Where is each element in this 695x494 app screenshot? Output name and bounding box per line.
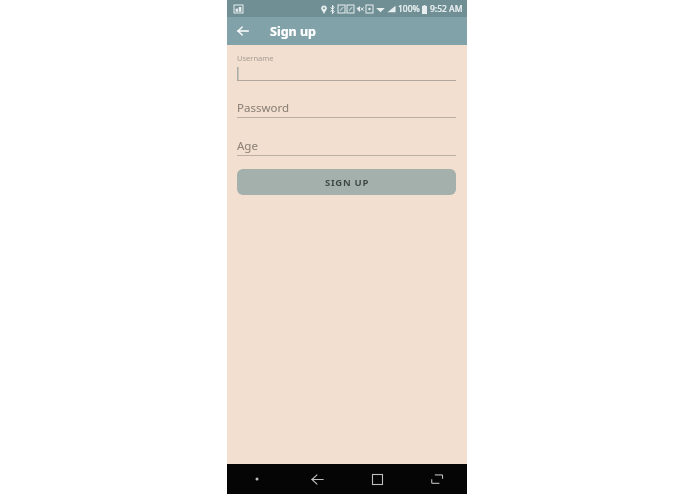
button[interactable]: Password [237,100,456,119]
staticText: 9:52 AM [430,3,463,15]
staticText: Age [237,138,258,153]
button[interactable]: Menu [227,464,287,494]
button[interactable]: Recent apps [407,464,467,494]
button[interactable]: Age [237,138,456,157]
staticText: Username [237,53,274,63]
staticText: Sign up [270,23,316,40]
button[interactable]: SIGN UP [237,169,456,195]
button[interactable]: Back [287,464,347,494]
staticText: 100% [398,3,420,15]
button[interactable]: Home [347,464,407,494]
button[interactable]: Username [237,53,456,82]
staticText: Password [237,100,290,115]
staticText: SIGN UP [325,176,369,189]
button[interactable]: Back [231,19,255,43]
